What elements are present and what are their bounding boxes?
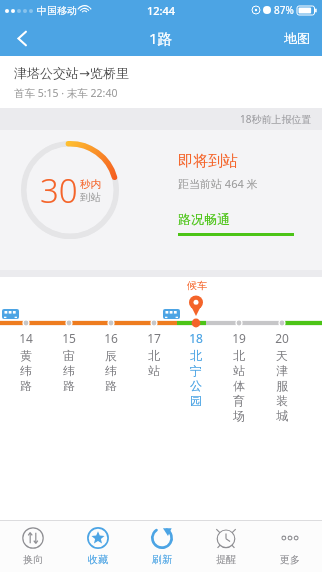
staticText: 纬 [20, 363, 32, 378]
staticText: 更多 [280, 553, 300, 566]
button[interactable]: 15 [58, 330, 80, 393]
button[interactable]: 20 [271, 330, 293, 423]
staticText: 1路 [149, 28, 173, 48]
staticText: 津 [276, 363, 288, 378]
button[interactable]: 18 [185, 330, 207, 408]
staticText: 16 [104, 330, 118, 346]
staticText: 即将到站 [178, 152, 238, 171]
staticText: 17 [147, 330, 161, 346]
button[interactable]: 提醒 [194, 521, 258, 572]
staticText: 距当前站 464 米 [178, 176, 258, 191]
staticText: 路况畅通 [178, 211, 230, 227]
button[interactable]: 刷新 [130, 521, 194, 572]
staticText: 场 [233, 408, 245, 423]
staticText: 首车 5:15 · 末车 22:40 [14, 86, 118, 100]
staticText: 北 [233, 348, 245, 363]
staticText: 中国移动 [37, 4, 77, 17]
staticText: 黄 [20, 348, 32, 363]
button[interactable]: 16 [100, 330, 122, 393]
staticText: 服 [276, 378, 288, 393]
staticText: 辰 [105, 348, 117, 363]
button[interactable]: 换向 [0, 521, 65, 572]
staticText: 纬 [105, 363, 117, 378]
staticText: 路 [20, 378, 32, 393]
staticText: 18秒前上报位置 [240, 112, 312, 126]
staticText: 提醒 [216, 553, 236, 566]
staticText: 候车 [187, 279, 207, 292]
staticText: 20 [275, 330, 289, 346]
staticText: 19 [232, 330, 246, 346]
staticText: 30 [40, 168, 78, 213]
staticText: 装 [276, 393, 288, 408]
button[interactable]: 更多 [258, 521, 322, 572]
staticText: 87% [274, 3, 294, 17]
staticText: 路 [63, 378, 75, 393]
button[interactable]: 地图 [272, 20, 322, 56]
button[interactable]: 收藏 [65, 521, 130, 572]
staticText: 刷新 [152, 553, 172, 566]
staticText: 秒内 [80, 178, 101, 191]
staticText: 宙 [63, 348, 75, 363]
staticText: 地图 [284, 30, 310, 46]
staticText: 园 [190, 393, 202, 408]
button[interactable]: 17 [143, 330, 165, 378]
staticText: 宁 [190, 363, 202, 378]
button[interactable]: 19 [228, 330, 250, 423]
staticText: 站 [233, 363, 245, 378]
staticText: 路 [105, 378, 117, 393]
staticText: 换向 [23, 553, 43, 566]
staticText: 体 [233, 378, 245, 393]
staticText: 15 [62, 330, 76, 346]
staticText: 纬 [63, 363, 75, 378]
staticText: 城 [276, 408, 288, 423]
staticText: 育 [233, 393, 245, 408]
staticText: 公 [190, 378, 202, 393]
staticText: 津塔公交站→览桥里 [14, 65, 129, 81]
staticText: 收藏 [88, 553, 108, 566]
staticText: 天 [276, 348, 288, 363]
staticText: 12:44 [147, 3, 176, 18]
staticText: 站 [148, 363, 160, 378]
staticText: 北 [148, 348, 160, 363]
staticText: 18 [189, 330, 203, 346]
button[interactable]: Back [0, 20, 44, 56]
staticText: 14 [19, 330, 33, 346]
staticText: 北 [190, 348, 202, 363]
button[interactable]: 14 [15, 330, 37, 393]
staticText: 到站 [80, 191, 101, 204]
